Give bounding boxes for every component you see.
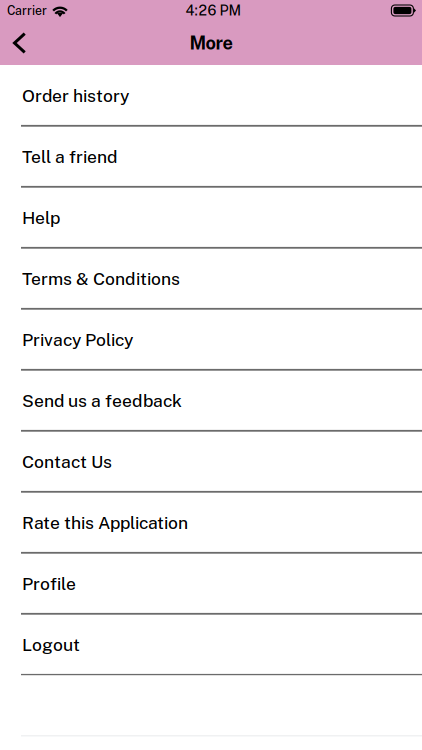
staticText: Logout [22, 634, 80, 655]
staticText: Order history [22, 85, 129, 106]
staticText: Send us a feedback [22, 390, 182, 411]
staticText: Help [22, 207, 60, 228]
staticText: Carrier [7, 3, 47, 18]
button[interactable]: Rate this Application [0, 492, 422, 553]
button[interactable]: Tell a friend [0, 126, 422, 187]
staticText: Tell a friend [22, 146, 117, 167]
staticText: Privacy Policy [22, 329, 133, 350]
button[interactable]: Back [0, 21, 45, 65]
button[interactable]: Logout [0, 614, 422, 675]
button[interactable]: Privacy Policy [0, 309, 422, 370]
button[interactable]: Profile [0, 553, 422, 614]
staticText: Terms & Conditions [22, 268, 180, 289]
staticText: 4:26 PM [185, 2, 241, 19]
button[interactable]: Terms & Conditions [0, 248, 422, 309]
staticText: Rate this Application [22, 512, 188, 533]
button[interactable]: Send us a feedback [0, 370, 422, 431]
button[interactable]: Contact Us [0, 431, 422, 492]
button[interactable]: Order history [0, 65, 422, 126]
button[interactable]: Help [0, 187, 422, 248]
staticText: More [189, 32, 232, 54]
staticText: Contact Us [22, 451, 112, 472]
staticText: Profile [22, 573, 76, 594]
